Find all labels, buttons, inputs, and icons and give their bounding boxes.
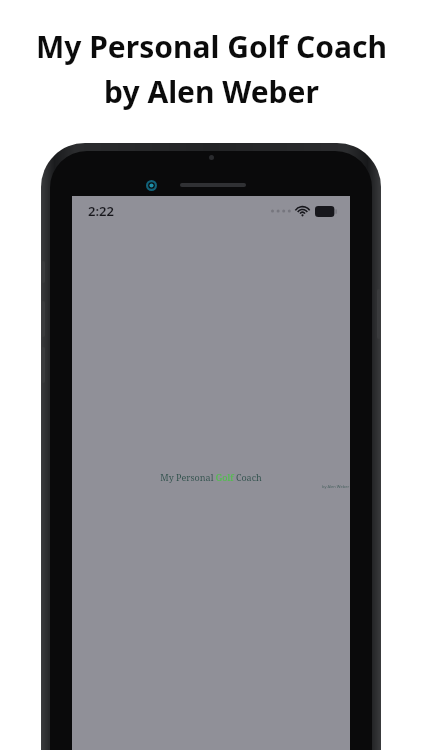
- staticText: My Personal Golf Coach: [36, 26, 387, 67]
- staticText: by Alen Weber: [104, 71, 319, 112]
- staticText: 2:22: [88, 202, 114, 220]
- staticText: by Alen Weber: [322, 484, 350, 489]
- button[interactable]: My Personal Golf Coach: [72, 471, 350, 489]
- staticText: My Personal Golf Coach: [160, 471, 262, 483]
